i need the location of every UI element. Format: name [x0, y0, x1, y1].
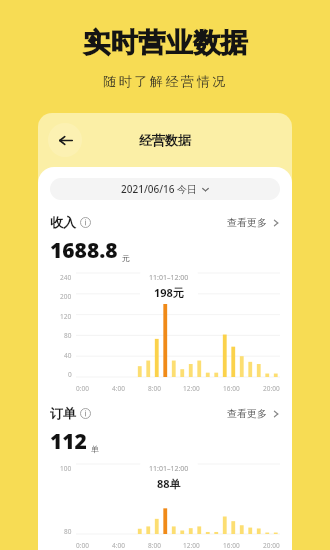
staticText: 随时了解经营情况: [103, 73, 228, 89]
staticText: 0:00: [76, 384, 89, 393]
staticText: 查看更多: [227, 407, 267, 420]
staticText: 8:00: [148, 541, 161, 550]
staticText: 1688.8: [50, 236, 118, 265]
staticText: 经营数据: [139, 132, 191, 148]
staticText: 8:00: [148, 384, 161, 393]
staticText: 2021/06/16 今日: [121, 182, 198, 196]
staticText: 4:00: [112, 384, 125, 393]
staticText: 40: [64, 351, 72, 360]
staticText: 12:00: [183, 384, 200, 393]
staticText: 240: [60, 273, 72, 282]
staticText: 4:00: [112, 541, 125, 550]
staticText: 收入: [50, 214, 76, 230]
staticText: 16:00: [223, 384, 240, 393]
button[interactable]: 查看更多: [227, 216, 280, 229]
staticText: 0:00: [76, 541, 89, 550]
staticText: 80: [64, 527, 72, 536]
button[interactable]: Info: [80, 217, 91, 228]
button[interactable]: Back: [48, 123, 82, 157]
staticText: 112: [50, 427, 87, 456]
staticText: 单: [91, 444, 99, 454]
staticText: 88单: [157, 476, 181, 491]
staticText: 20:00: [263, 384, 280, 393]
staticText: 120: [60, 312, 72, 321]
staticText: 查看更多: [227, 216, 267, 229]
staticText: 80: [64, 331, 72, 340]
staticText: 198元: [154, 285, 184, 300]
staticText: 订单: [50, 405, 76, 421]
staticText: 100: [60, 464, 72, 473]
button[interactable]: 2021/06/16 今日: [50, 178, 280, 200]
staticText: 元: [122, 253, 130, 263]
staticText: 11:01–12:00: [149, 273, 189, 283]
button[interactable]: 查看更多: [227, 407, 280, 420]
staticText: 200: [60, 292, 72, 301]
button[interactable]: Info: [80, 408, 91, 419]
staticText: 0: [68, 370, 72, 379]
staticText: 11:01–12:00: [149, 464, 189, 474]
staticText: 12:00: [183, 541, 200, 550]
staticText: 20:00: [263, 541, 280, 550]
staticText: 实时营业数据: [83, 26, 248, 60]
staticText: 16:00: [223, 541, 240, 550]
